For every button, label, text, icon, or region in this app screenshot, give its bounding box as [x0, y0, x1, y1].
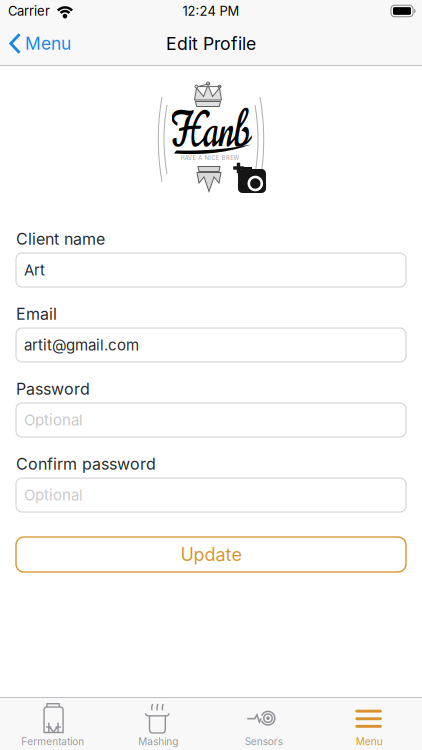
staticText: Confirm password [16, 454, 156, 474]
staticText: Art [24, 261, 45, 279]
button[interactable]: Mashing [105, 698, 211, 750]
button[interactable]: Back to Menu [0, 33, 71, 54]
button[interactable]: Menu [316, 698, 422, 750]
button[interactable]: Change profile photo [121, 78, 301, 208]
staticText: Menu [356, 735, 383, 748]
staticText: Email [16, 304, 57, 324]
staticText: Carrier [8, 3, 50, 19]
staticText: Edit Profile [166, 33, 256, 54]
staticText: Sensors [245, 735, 283, 748]
button[interactable]: Sensors [211, 698, 316, 750]
staticText: artit@gmail.com [24, 336, 139, 354]
button[interactable]: Update [16, 537, 406, 572]
button[interactable]: Fermentation [0, 698, 105, 750]
staticText: 12:24 PM [182, 3, 239, 19]
staticText: Hanb [160, 98, 261, 162]
staticText: Optional [24, 486, 83, 504]
staticText: Client name [16, 229, 105, 249]
staticText: Mashing [138, 735, 178, 748]
staticText: Password [16, 379, 90, 399]
staticText: Menu [25, 33, 71, 54]
staticText: HAVE A NICE BREW [180, 155, 240, 161]
staticText: Update [180, 544, 241, 565]
staticText: Optional [24, 411, 83, 429]
staticText: Fermentation [21, 735, 84, 748]
